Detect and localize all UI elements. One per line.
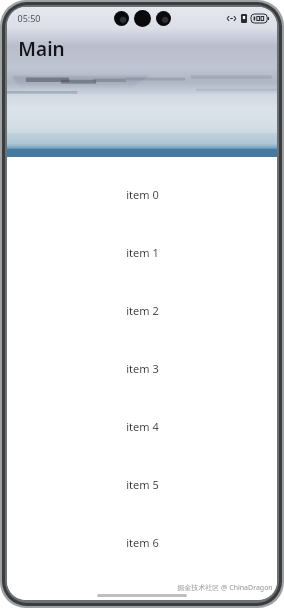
button[interactable]: item 0 bbox=[7, 165, 277, 223]
button[interactable]: item 6 bbox=[7, 513, 277, 571]
button[interactable]: item 1 bbox=[7, 223, 277, 281]
staticText: 05:50 bbox=[17, 12, 41, 24]
staticText: item 0 bbox=[126, 187, 159, 202]
staticText: item 2 bbox=[126, 303, 159, 318]
staticText: item 3 bbox=[126, 361, 159, 376]
button[interactable]: item 2 bbox=[7, 281, 277, 339]
staticText: item 4 bbox=[126, 419, 159, 434]
button[interactable]: item 5 bbox=[7, 455, 277, 513]
staticText: item 5 bbox=[126, 477, 159, 492]
other: Battery 100 percent bbox=[251, 14, 269, 23]
staticText: Main bbox=[18, 36, 65, 62]
staticText: item 1 bbox=[126, 245, 159, 260]
other: USB debugging bbox=[226, 14, 237, 23]
button[interactable]: item 4 bbox=[7, 397, 277, 455]
staticText: 掘金技术社区 @ ChinaDragon bbox=[177, 583, 273, 593]
button[interactable]: item 3 bbox=[7, 339, 277, 397]
other: Status icon bbox=[241, 14, 247, 23]
staticText: item 6 bbox=[126, 535, 159, 550]
